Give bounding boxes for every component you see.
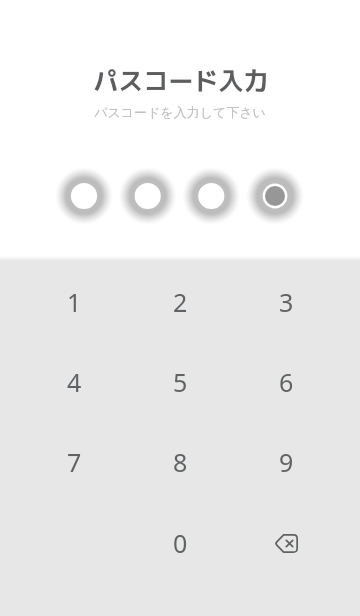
button[interactable]: 5	[136, 352, 224, 412]
staticText: 8	[173, 445, 188, 479]
button[interactable]: 3	[242, 272, 330, 332]
staticText: 0	[173, 526, 188, 560]
staticText: 7	[67, 445, 82, 479]
staticText: 4	[67, 365, 82, 399]
button[interactable]: 0	[136, 513, 224, 573]
staticText: 9	[279, 445, 294, 479]
staticText: 5	[173, 365, 188, 399]
button[interactable]: 9	[242, 432, 330, 492]
button[interactable]: 4	[30, 352, 118, 412]
staticText: 1	[67, 285, 82, 319]
staticText: 6	[279, 365, 294, 399]
staticText: パスコードを入力して下さい	[0, 104, 360, 120]
button[interactable]: 2	[136, 272, 224, 332]
staticText: パスコード入力	[1, 63, 360, 98]
button[interactable]: 6	[242, 352, 330, 412]
staticText: 3	[279, 285, 294, 319]
staticText: 2	[173, 285, 188, 319]
button[interactable]: 1	[30, 272, 118, 332]
button[interactable]: Backspace	[242, 513, 330, 573]
button[interactable]: 8	[136, 432, 224, 492]
button[interactable]: 7	[30, 432, 118, 492]
